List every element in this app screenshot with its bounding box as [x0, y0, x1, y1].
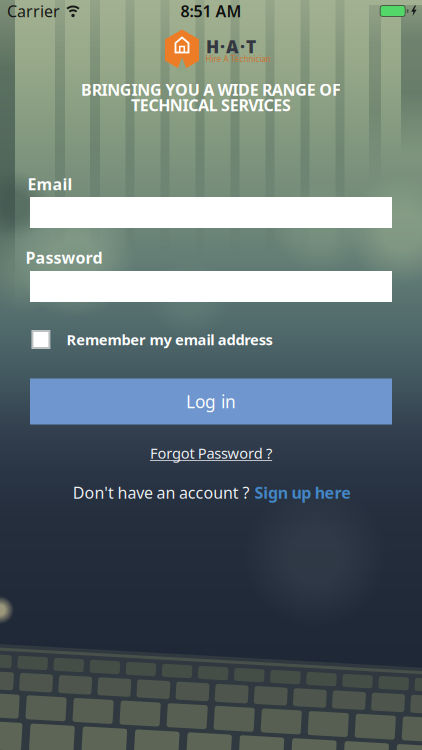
staticText: Forgot Password ?	[150, 443, 272, 463]
staticText: Sign up here	[254, 482, 351, 503]
button[interactable]: Log in	[30, 378, 392, 424]
staticText: TECHNICAL SERVICES	[131, 94, 291, 116]
staticText: Don't have an account ?	[73, 482, 249, 503]
button[interactable]: Sign up here	[254, 482, 351, 503]
staticText: Log in	[186, 390, 236, 413]
staticText: H·A·T	[206, 35, 256, 58]
staticText: Hire A Technician	[205, 54, 270, 64]
staticText: Password	[25, 247, 102, 268]
staticText: Remember my email address	[66, 330, 273, 349]
staticText: 8:51 AM	[180, 0, 241, 22]
button[interactable]: Remember my email address	[31, 330, 273, 349]
staticText: Email	[27, 173, 72, 195]
staticText: BRINGING YOU A WIDE RANGE OF	[81, 79, 341, 100]
button[interactable]: Forgot Password ?	[150, 443, 272, 463]
staticText: Carrier	[7, 0, 60, 22]
